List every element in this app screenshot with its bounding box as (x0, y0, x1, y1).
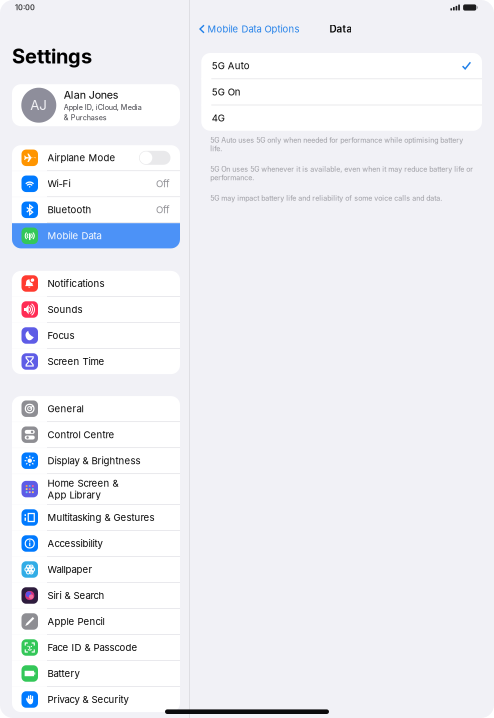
staticText: AJ (30, 97, 47, 113)
button[interactable]: 5G On (201, 79, 482, 105)
staticText: Apple Pencil (47, 616, 104, 627)
button[interactable]: Airplane Mode (12, 145, 180, 170)
button[interactable]: Multitasking & Gestures (12, 505, 180, 530)
staticText: 5G Auto (212, 60, 250, 71)
staticText: Data (329, 23, 352, 35)
staticText: Bluetooth (47, 204, 91, 216)
staticText: Mobile Data Options (207, 23, 299, 35)
staticText: Off (156, 204, 170, 216)
staticText: 5G On (212, 86, 241, 98)
button[interactable]: Wi-Fi (12, 171, 180, 196)
staticText: 10:00 (15, 3, 35, 12)
button[interactable]: Wallpaper (12, 557, 180, 582)
staticText: Apple ID, iCloud, Media (64, 103, 142, 112)
staticText: Wallpaper (47, 564, 92, 575)
staticText: Focus (47, 330, 74, 341)
button[interactable]: Privacy & Security (12, 687, 180, 712)
staticText: 5G On uses 5G whenever it is available, … (210, 165, 473, 182)
button[interactable]: Bluetooth (12, 197, 180, 222)
button[interactable]: Mobile Data (12, 223, 180, 248)
staticText: Mobile Data (47, 230, 101, 242)
button[interactable]: Siri & Search (12, 583, 180, 608)
button[interactable]: Screen Time (12, 349, 180, 374)
staticText: 5G may impact battery life and reliabili… (210, 194, 442, 202)
staticText: Wi-Fi (47, 178, 70, 190)
staticText: Off (156, 178, 170, 190)
button[interactable]: General (12, 396, 180, 421)
staticText: Battery (47, 668, 79, 679)
staticText: Privacy & Security (47, 694, 128, 705)
staticText: 5G Auto uses 5G only when needed for per… (210, 136, 463, 153)
button[interactable]: AJ (12, 84, 180, 126)
staticText: Accessibility (47, 538, 102, 549)
staticText: Sounds (47, 304, 82, 315)
staticText: General (47, 403, 83, 414)
button[interactable]: Mobile Data Options (190, 18, 299, 40)
button[interactable]: Accessibility (12, 531, 180, 556)
staticText: Home Screen & App Library (47, 477, 118, 501)
button[interactable]: Control Centre (12, 422, 180, 447)
staticText: Alan Jones (64, 88, 119, 101)
staticText: 4G (212, 112, 225, 124)
staticText: Notifications (47, 278, 104, 289)
staticText: Settings (12, 44, 92, 68)
button[interactable]: Apple Pencil (12, 609, 180, 634)
staticText: Siri & Search (47, 590, 104, 601)
staticText: & Purchases (64, 113, 107, 122)
staticText: Airplane Mode (47, 152, 115, 164)
staticText: Screen Time (47, 356, 104, 367)
staticText: Face ID & Passcode (47, 642, 137, 653)
staticText: Control Centre (47, 429, 114, 440)
button[interactable]: Focus (12, 323, 180, 348)
button[interactable]: Display & Brightness (12, 448, 180, 473)
button[interactable]: Home Screen & App Library (12, 474, 180, 504)
staticText: Multitasking & Gestures (47, 512, 154, 523)
button[interactable]: Face ID & Passcode (12, 635, 180, 660)
button[interactable]: Battery (12, 661, 180, 686)
button[interactable]: Notifications (12, 271, 180, 296)
button[interactable]: Sounds (12, 297, 180, 322)
staticText: Display & Brightness (47, 455, 140, 466)
button[interactable]: 4G (201, 105, 482, 131)
button[interactable]: 5G Auto (201, 53, 482, 78)
